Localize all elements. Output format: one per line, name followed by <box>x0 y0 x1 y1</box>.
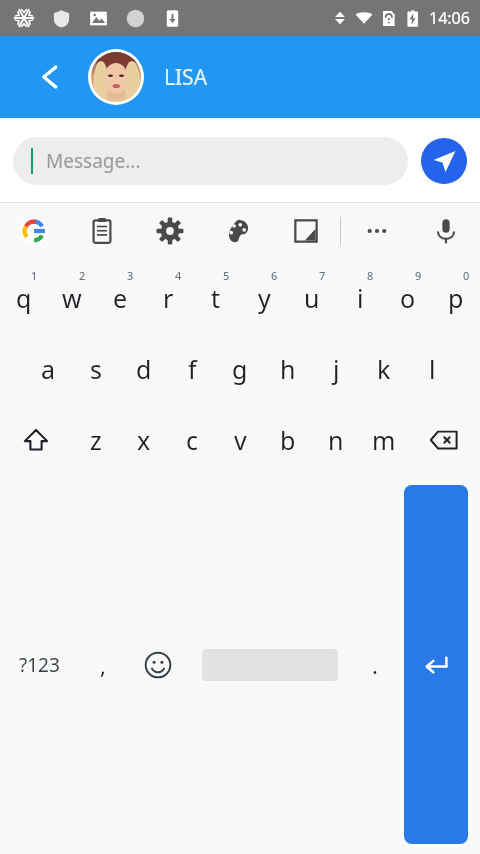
button[interactable]: Settings <box>136 203 204 259</box>
staticText: 0 <box>463 268 470 283</box>
button[interactable]: b <box>264 405 312 475</box>
button[interactable]: l <box>408 333 456 405</box>
button[interactable]: ?123 <box>0 475 78 854</box>
button[interactable] <box>88 49 144 105</box>
staticText: s <box>90 352 102 386</box>
button[interactable]: 4 <box>144 259 192 333</box>
button[interactable]: 7 <box>288 259 336 333</box>
button[interactable]: Voice input <box>412 203 480 259</box>
button[interactable]: Send <box>421 138 467 184</box>
button[interactable]: z <box>72 405 120 475</box>
staticText: 8 <box>367 268 374 283</box>
button[interactable]: 5 <box>192 259 240 333</box>
staticText: 3 <box>127 268 134 283</box>
staticText: 1 <box>31 268 38 283</box>
staticText: 4 <box>175 268 182 283</box>
staticText: o <box>400 281 416 315</box>
staticText: , <box>100 650 106 680</box>
button[interactable]: Emoji <box>128 475 188 854</box>
staticText: t <box>211 281 221 315</box>
button[interactable]: Google <box>0 203 68 259</box>
button[interactable]: Shift <box>0 405 72 475</box>
button[interactable]: g <box>216 333 264 405</box>
button[interactable]: v <box>216 405 264 475</box>
staticText: 5 <box>223 268 230 283</box>
button[interactable]: Enter <box>404 485 468 844</box>
button[interactable]: k <box>360 333 408 405</box>
button[interactable]: n <box>312 405 360 475</box>
staticText: k <box>377 352 391 386</box>
staticText: f <box>188 352 197 386</box>
staticText: n <box>328 423 344 457</box>
staticText: y <box>258 281 271 315</box>
staticText: ?123 <box>19 652 60 678</box>
button[interactable]: m <box>360 405 408 475</box>
button[interactable]: More options <box>341 203 412 259</box>
button[interactable]: 2 <box>48 259 96 333</box>
button[interactable]: j <box>312 333 360 405</box>
staticText: d <box>136 352 152 386</box>
button[interactable]: Themes <box>204 203 272 259</box>
staticText: j <box>333 352 340 386</box>
button[interactable]: c <box>168 405 216 475</box>
staticText: i <box>357 281 364 315</box>
button[interactable]: Space <box>188 475 352 854</box>
button[interactable]: . <box>352 475 398 854</box>
button[interactable]: 8 <box>336 259 384 333</box>
staticText: . <box>372 650 378 680</box>
button[interactable]: Backspace <box>408 405 480 475</box>
staticText: x <box>137 423 151 457</box>
staticText: r <box>163 281 174 315</box>
staticText: c <box>186 423 199 457</box>
button[interactable]: Stickers <box>272 203 340 259</box>
button[interactable]: 3 <box>96 259 144 333</box>
staticText: e <box>113 281 128 315</box>
button[interactable]: d <box>120 333 168 405</box>
button[interactable]: 0 <box>432 259 480 333</box>
staticText: u <box>304 281 320 315</box>
staticText: 6 <box>271 268 278 283</box>
staticText: p <box>448 281 464 315</box>
staticText: q <box>16 281 32 315</box>
button[interactable]: , <box>78 475 128 854</box>
staticText: a <box>41 352 56 386</box>
staticText: 2 <box>79 268 86 283</box>
button[interactable]: Back <box>30 57 70 97</box>
staticText: h <box>280 352 296 386</box>
button[interactable]: 9 <box>384 259 432 333</box>
button[interactable]: f <box>168 333 216 405</box>
staticText: v <box>234 423 247 457</box>
staticText: b <box>280 423 296 457</box>
staticText: 9 <box>415 268 422 283</box>
staticText: z <box>90 423 102 457</box>
button[interactable]: a <box>24 333 72 405</box>
button[interactable]: LISA <box>164 63 208 92</box>
staticText: m <box>372 423 396 457</box>
button[interactable]: s <box>72 333 120 405</box>
button[interactable]: 1 <box>0 259 48 333</box>
staticText: Message... <box>46 148 141 174</box>
button[interactable]: Clipboard <box>68 203 136 259</box>
staticText: 14:06 <box>429 7 470 29</box>
staticText: w <box>62 281 82 315</box>
button[interactable]: h <box>264 333 312 405</box>
button[interactable]: 6 <box>240 259 288 333</box>
button[interactable]: x <box>120 405 168 475</box>
staticText: 7 <box>319 268 326 283</box>
button[interactable]: Message... <box>13 137 408 185</box>
staticText: l <box>429 352 436 386</box>
staticText: g <box>232 352 248 386</box>
